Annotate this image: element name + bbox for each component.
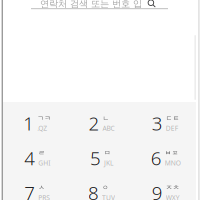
staticText: ㅁ [104, 149, 111, 157]
staticText: 7 [24, 180, 35, 200]
staticText: ㄹ [38, 149, 45, 157]
button[interactable]: 연락처 검색 또는 번호 입력... [31, 0, 168, 10]
staticText: 8 [88, 180, 99, 200]
staticText: ABC [102, 124, 114, 133]
staticText: ㄷㅌ [166, 114, 180, 122]
staticText: 1 [23, 111, 34, 136]
staticText: .QZ [37, 124, 47, 133]
button[interactable]: 5 [67, 141, 132, 175]
staticText: PRS [38, 193, 50, 200]
staticText: MNO [165, 158, 181, 167]
staticText: 연락처 검색 또는 번호 입력... [40, 0, 160, 10]
staticText: GHI [38, 158, 50, 167]
staticText: 2 [88, 111, 99, 136]
staticText: ㅂㅍ [165, 149, 179, 157]
staticText: DEF [166, 124, 178, 133]
staticText: ㅈㅊ [166, 183, 180, 192]
staticText: ㄱㅋ [37, 114, 51, 122]
staticText: TUV [102, 193, 115, 200]
staticText: 6 [151, 146, 162, 170]
button[interactable]: 8 [67, 175, 132, 200]
staticText: 4 [24, 146, 35, 170]
staticText: 5 [90, 146, 101, 170]
button[interactable]: 2 [67, 106, 132, 141]
staticText: 9 [152, 180, 163, 200]
button[interactable]: 7 [3, 175, 67, 200]
staticText: ㄴ [102, 114, 109, 122]
staticText: 3 [152, 111, 163, 136]
button[interactable]: 3 [132, 106, 196, 141]
button[interactable]: 4 [3, 141, 67, 175]
staticText: ㅇ [102, 183, 109, 192]
button[interactable]: 9 [132, 175, 196, 200]
button[interactable]: 1 [3, 106, 67, 141]
staticText: WXY [166, 193, 180, 200]
staticText: JKL [104, 158, 113, 167]
button[interactable]: 6 [132, 141, 196, 175]
staticText: ㅅ [38, 183, 45, 192]
